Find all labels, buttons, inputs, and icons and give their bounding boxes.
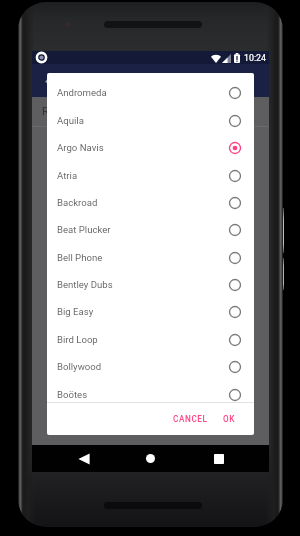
staticText: Aquila [57,115,84,126]
button[interactable]: Home [137,445,164,472]
staticText: Bollywood [57,361,102,372]
button[interactable]: Bentley Dubs [47,271,254,298]
staticText: CANCEL [173,414,208,424]
staticText: Atria [57,170,78,181]
staticText: Bentley Dubs [57,279,113,290]
button[interactable]: Atria [47,162,254,189]
button[interactable]: Beat Plucker [47,216,254,243]
button[interactable]: Argo Navis [47,134,254,161]
staticText: Bird Loop [57,334,98,345]
staticText: Boötes [57,389,88,400]
button[interactable]: CANCEL [167,408,214,430]
button[interactable]: Bell Phone [47,244,254,271]
button[interactable]: Big Easy [47,298,254,325]
button[interactable]: Backroad [47,189,254,216]
button[interactable]: Bollywood [47,353,254,380]
staticText: Backroad [57,197,98,208]
staticText: Beat Plucker [57,224,111,235]
staticText: Argo Navis [57,142,104,153]
button[interactable]: Andromeda [47,79,254,106]
button[interactable]: Back [70,445,97,472]
button[interactable]: OK [217,408,242,430]
staticText: Andromeda [57,87,107,98]
staticText: 10:24 [244,53,266,63]
button[interactable]: Aquila [47,107,254,134]
button[interactable]: Bird Loop [47,326,254,353]
staticText: OK [223,414,236,424]
button[interactable]: Boötes [47,381,254,402]
staticText: Bell Phone [57,252,103,263]
button[interactable]: Recent apps [205,445,232,472]
button[interactable]: Navigate up [38,71,58,91]
staticText: Big Easy [57,306,94,317]
staticText: R [42,105,49,118]
